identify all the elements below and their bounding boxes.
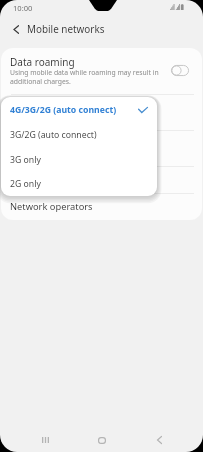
staticText: 2G only — [10, 178, 148, 190]
staticText: 3G/2G (auto connect) — [10, 129, 148, 141]
staticText: 3G only — [10, 154, 148, 166]
button[interactable]: Data roaming — [1, 48, 202, 94]
staticText: T-Mobile US LTE — [10, 150, 63, 160]
staticText: 10:00 — [13, 3, 33, 13]
button[interactable]: 3G/2G (auto connect) — [1, 122, 157, 147]
staticText: Using mobile data while roaming may resu… — [10, 68, 162, 86]
button[interactable]: Back — [147, 428, 171, 452]
button[interactable]: 4G/3G/2G (auto connect) — [1, 97, 157, 122]
button[interactable]: Navigate up — [7, 20, 25, 38]
button[interactable]: Recent apps — [33, 428, 57, 452]
staticText: Network mode — [10, 173, 76, 186]
staticText: Mobile networks — [27, 22, 105, 35]
staticText: 4G/3G/2G (auto connect) — [10, 104, 138, 116]
staticText: Data roaming — [10, 55, 75, 69]
button[interactable]: Home — [90, 428, 114, 452]
button[interactable]: Network mode — [1, 167, 202, 193]
staticText: Network operators — [10, 200, 93, 213]
button[interactable]: 2G only — [1, 172, 157, 196]
button[interactable]: 3G only — [1, 147, 157, 172]
button[interactable]: Access Point Names — [1, 131, 202, 166]
staticText: Network mode — [10, 99, 76, 112]
staticText: Access Point Names — [10, 135, 98, 148]
button[interactable]: Network operators — [1, 194, 202, 220]
staticText: LTE/3G/2G (auto connect) — [10, 114, 94, 124]
button[interactable]: Network mode — [1, 95, 202, 130]
